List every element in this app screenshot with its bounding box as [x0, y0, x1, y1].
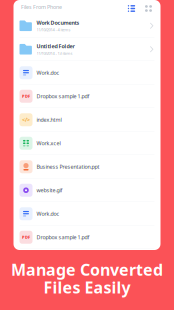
staticText: PDF — [22, 94, 30, 99]
staticText: 11/10/2014 - 4 items — [36, 27, 70, 32]
button[interactable]: PDF — [13, 84, 160, 108]
staticText: Files From Phone — [21, 3, 62, 11]
staticText: Work Documents — [36, 19, 79, 26]
staticText: 11/10/2014 - 13 items — [36, 50, 72, 56]
staticText: PDF — [22, 235, 30, 240]
button[interactable]: List view — [121, 0, 141, 14]
staticText: Untitled Folder — [36, 43, 74, 50]
staticText: Dropbox sample 1.pdf — [36, 234, 89, 241]
button[interactable]: Untitled Folder — [13, 37, 160, 61]
staticText: Work.doc — [36, 210, 59, 217]
button[interactable]: Grid view — [141, 0, 155, 14]
staticText: Dropbox sample 1.pdf — [36, 93, 89, 100]
staticText: Work.doc — [36, 69, 59, 76]
staticText: Manage Converted — [11, 259, 163, 280]
staticText: Business Presentation.ppt — [36, 163, 99, 170]
button[interactable]: Work.doc — [13, 202, 160, 225]
button[interactable]: Work.doc — [13, 61, 160, 84]
staticText: Files Easily — [43, 277, 130, 298]
staticText: website.gif — [36, 187, 62, 194]
button[interactable]: Work.xcel — [13, 131, 160, 155]
button[interactable]: </> — [13, 108, 160, 131]
button[interactable]: website.gif — [13, 178, 160, 202]
button[interactable]: PDF — [13, 225, 160, 249]
staticText: Work.xcel — [36, 140, 60, 147]
button[interactable]: Work Documents — [13, 14, 160, 37]
button[interactable]: Business Presentation.ppt — [13, 155, 160, 178]
staticText: </> — [22, 116, 30, 123]
staticText: index.html — [36, 116, 61, 123]
